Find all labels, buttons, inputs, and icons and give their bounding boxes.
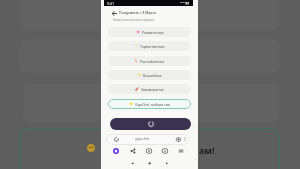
staticText: 🌸 [136,30,141,34]
other: Поиск по картинке [176,137,181,142]
staticText: GigaChat, выбери сам [135,102,171,106]
button[interactable]: 🥂 [108,41,191,51]
staticText: 9:41 [107,1,115,6]
button[interactable]: 🍹 [108,56,191,66]
staticText: ⭐ [129,102,134,106]
staticText: •••• ▮▮ [180,1,190,5]
button[interactable]: Меню [178,148,184,154]
staticText: giga.chat [135,137,149,141]
button[interactable]: Назад [110,9,118,17]
button[interactable]: 🌸 [108,27,191,37]
button[interactable]: Закладки [146,148,152,154]
staticText: Расслабленное [140,59,165,63]
other: Меню браузера [183,137,187,141]
button[interactable]: 🎻 [108,84,191,94]
staticText: Волшебное [143,73,162,77]
button[interactable]: Алиса [113,148,119,154]
staticText: Торжественное [140,44,165,48]
button[interactable]: Обновить [106,134,189,145]
staticText: 🍹 [134,59,139,63]
button[interactable]: Поделиться [130,148,136,154]
staticText: Заковыристое [141,87,164,91]
staticText: ✨ [137,73,142,77]
other: Обновить [114,137,119,142]
button[interactable]: Вкладки [162,148,168,154]
button[interactable]: Продолжить [110,118,191,130]
staticText: Романтичное [142,30,164,34]
staticText: 🥂 [134,44,139,48]
staticText: Какой посыл хочешь передать [113,18,155,22]
button[interactable]: ⭐ [108,99,191,109]
staticText: Поздравить с 8 Марта [119,10,156,15]
staticText: 🎻 [135,87,140,91]
staticText: ам! [199,144,215,156]
button[interactable]: ✨ [108,70,191,80]
